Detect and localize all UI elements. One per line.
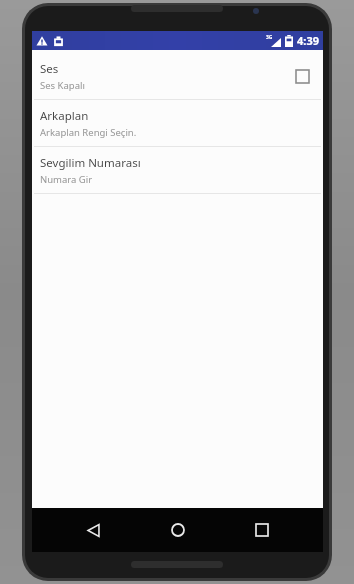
button[interactable]: Recent apps — [239, 513, 285, 547]
button[interactable]: Arkaplan — [32, 100, 323, 146]
staticText: Arkaplan Rengi Seçin. — [40, 126, 137, 139]
button[interactable]: Home — [155, 513, 201, 547]
button[interactable]: Sevgilim Numarası — [32, 147, 323, 193]
staticText: Ses Kapalı — [40, 79, 85, 92]
button[interactable]: Ses toggle — [291, 65, 313, 87]
staticText: 4:39 — [297, 33, 319, 48]
staticText: Ses — [40, 61, 59, 77]
button[interactable]: Back — [70, 513, 116, 547]
button[interactable]: Ses — [32, 53, 323, 99]
staticText: Arkaplan — [40, 108, 89, 124]
staticText: Sevgilim Numarası — [40, 155, 141, 171]
staticText: 3G — [266, 34, 273, 41]
staticText: Numara Gir — [40, 173, 93, 186]
